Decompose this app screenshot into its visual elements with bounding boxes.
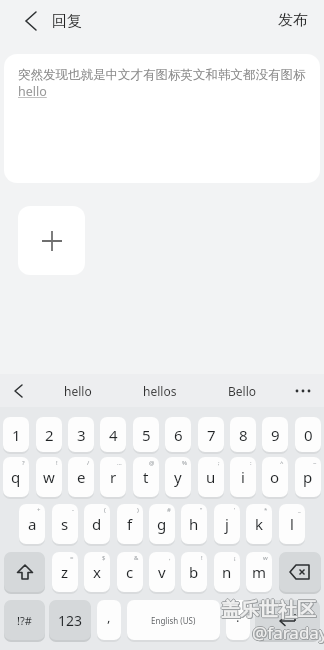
button[interactable]: hello [48, 378, 108, 404]
staticText: 8 [239, 425, 248, 445]
button[interactable]: !?# [4, 600, 45, 640]
staticText: 2 [45, 425, 54, 445]
button[interactable]: r [100, 457, 126, 497]
staticText: 盖乐世社区 [222, 598, 317, 622]
staticText: = [70, 554, 74, 562]
staticText: u [206, 467, 216, 487]
staticText: m [252, 562, 267, 582]
staticText: 突然发现也就是中文才有图标英文和韩文都没有图标 [18, 67, 306, 83]
staticText: hello [18, 83, 47, 100]
button[interactable]: k [246, 504, 272, 544]
staticText: w [43, 467, 55, 487]
staticText: 盖乐世社区 [221, 599, 316, 623]
button[interactable]: s [52, 504, 78, 544]
staticText: ( [104, 506, 106, 514]
button[interactable]: a [19, 504, 45, 544]
button[interactable] [6, 378, 32, 404]
staticText: ; [218, 459, 220, 467]
button[interactable] [255, 600, 320, 640]
staticText: ¡ [234, 554, 236, 562]
button[interactable]: d [84, 504, 110, 544]
button[interactable]: 7 [198, 417, 224, 452]
button[interactable] [279, 552, 321, 592]
staticText: 123 [58, 611, 83, 630]
staticText: 7 [207, 425, 216, 445]
staticText: d [92, 514, 102, 534]
staticText: 盖乐世社区 [220, 598, 315, 622]
button[interactable]: 123 [49, 600, 91, 640]
button[interactable]: t [133, 457, 159, 497]
button[interactable] [4, 552, 45, 592]
button[interactable]: English (US) [127, 600, 220, 640]
button[interactable]: 3 [68, 417, 94, 452]
button[interactable]: b [181, 552, 207, 592]
button[interactable]: 8 [230, 417, 256, 452]
button[interactable]: i [230, 457, 256, 497]
staticText: 5 [142, 425, 151, 445]
button[interactable]: 1 [3, 417, 29, 452]
button[interactable]: h [181, 504, 207, 544]
button[interactable]: 2 [36, 417, 62, 452]
button[interactable] [14, 6, 46, 36]
button[interactable]: y [165, 457, 191, 497]
button[interactable]: Bello [212, 378, 272, 404]
button[interactable]: z [52, 552, 78, 592]
button[interactable]: g [149, 504, 175, 544]
staticText: , [169, 554, 171, 562]
staticText: 1 [12, 425, 21, 445]
button[interactable]: , [97, 600, 121, 640]
staticText: hellos [143, 383, 177, 399]
staticText: * [264, 506, 268, 514]
button[interactable] [18, 206, 85, 275]
staticText: % [182, 459, 187, 467]
button[interactable]: c [117, 552, 143, 592]
staticText: ! [201, 554, 203, 562]
staticText: , [107, 608, 111, 626]
staticText: ~ [313, 459, 317, 467]
staticText: ^ [280, 459, 284, 467]
staticText: f [127, 514, 133, 534]
staticText: @faraday [253, 621, 324, 644]
staticText: ' [234, 506, 236, 514]
button[interactable]: w [36, 457, 62, 497]
button[interactable]: 发布 [270, 6, 316, 34]
staticText: @faraday [252, 621, 324, 644]
button[interactable]: n [214, 552, 240, 592]
staticText: @faraday [251, 621, 324, 644]
button[interactable]: f [117, 504, 143, 544]
button[interactable]: 4 [100, 417, 126, 452]
button[interactable] [288, 378, 318, 404]
staticText: j [225, 514, 229, 534]
staticText: Bello [228, 383, 257, 399]
button[interactable]: m [246, 552, 272, 592]
staticText: @faraday [253, 622, 324, 645]
button[interactable]: hellos [130, 378, 190, 404]
button[interactable]: l [279, 504, 305, 544]
staticText: … [117, 459, 122, 467]
staticText: 9 [271, 425, 280, 445]
button[interactable]: o [262, 457, 288, 497]
button[interactable]: 5 [133, 417, 159, 452]
button[interactable]: 0 [295, 417, 321, 452]
button[interactable]: p [295, 457, 321, 497]
button[interactable]: 6 [165, 417, 191, 452]
button[interactable]: v [149, 552, 175, 592]
button[interactable]: x [84, 552, 110, 592]
button[interactable]: j [214, 504, 240, 544]
button[interactable]: 突然发现也就是中文才有图标英文和韩文都没有图标 [4, 54, 320, 183]
staticText: k [255, 514, 264, 534]
staticText: + [37, 506, 41, 514]
staticText: @ [149, 459, 155, 467]
button[interactable]: 9 [262, 417, 288, 452]
button[interactable]: . [226, 600, 250, 640]
staticText: @faraday [252, 622, 324, 645]
staticText: 盖乐世社区 [221, 597, 316, 621]
button[interactable]: u [198, 457, 224, 497]
staticText: l [290, 514, 294, 534]
staticText: ) [137, 506, 139, 514]
button[interactable]: q [3, 457, 29, 497]
staticText: hello [64, 383, 92, 399]
staticText: o [270, 467, 280, 487]
staticText: p [303, 467, 313, 487]
button[interactable]: e [68, 457, 94, 497]
